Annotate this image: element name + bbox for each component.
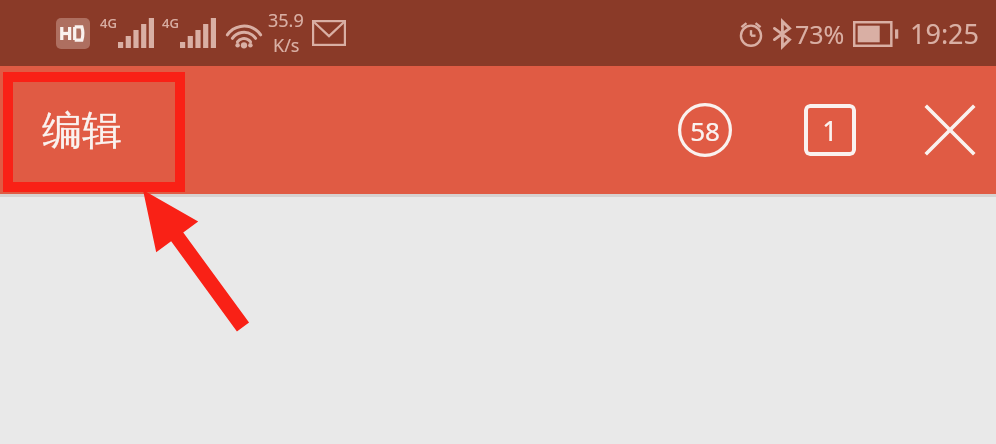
staticText: 编辑	[42, 105, 122, 155]
staticText: 35.9	[268, 8, 304, 33]
staticText: 4G	[162, 14, 179, 32]
staticText: 1	[822, 112, 838, 149]
staticText: K/s	[273, 33, 300, 58]
button[interactable]: Remaining count 58	[673, 98, 737, 162]
button[interactable]: 编辑	[42, 105, 122, 155]
button[interactable]: Pages 1	[798, 98, 862, 162]
staticText: 58	[690, 113, 720, 148]
staticText: 73%	[795, 17, 845, 51]
staticText: 19:25	[910, 15, 980, 52]
staticText: 4G	[100, 14, 117, 32]
button[interactable]: Close	[918, 98, 982, 162]
